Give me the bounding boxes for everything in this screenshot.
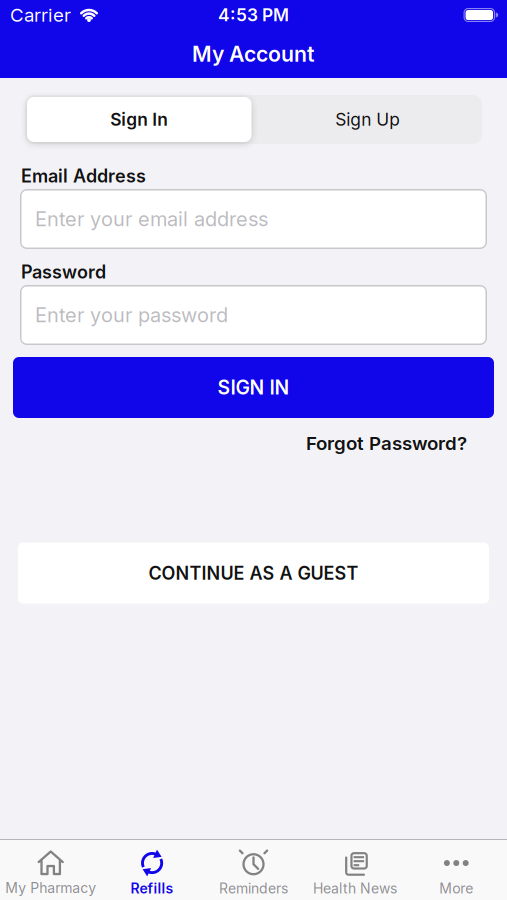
staticText: SIGN IN [217, 376, 289, 399]
staticText: Forgot Password? [306, 432, 467, 455]
staticText: Enter your password [35, 303, 228, 327]
staticText: Health News [313, 880, 397, 897]
button[interactable]: CONTINUE AS A GUEST [18, 543, 489, 604]
staticText: Enter your email address [35, 207, 268, 231]
staticText: Reminders [219, 880, 288, 897]
staticText: My Account [192, 41, 315, 67]
staticText: CONTINUE AS A GUEST [148, 562, 358, 584]
button[interactable]: More [406, 848, 507, 897]
staticText: Password [21, 261, 106, 283]
staticText: 4:53 PM [218, 4, 289, 25]
button[interactable]: Reminders [203, 848, 304, 897]
button[interactable]: My Pharmacy [0, 848, 101, 896]
staticText: Sign In [110, 109, 168, 130]
button[interactable]: Sign In [25, 95, 253, 144]
staticText: More [439, 880, 473, 897]
button[interactable]: Enter your email address [20, 189, 487, 249]
staticText: Carrier [10, 4, 71, 26]
button[interactable]: Forgot Password? [306, 432, 467, 455]
button[interactable]: Health News [304, 848, 406, 897]
staticText: Email Address [21, 165, 146, 187]
staticText: Sign Up [335, 109, 400, 130]
button[interactable]: Refills [101, 848, 203, 897]
staticText: Refills [131, 880, 174, 897]
button[interactable]: Enter your password [20, 285, 487, 345]
button[interactable]: Sign Up [253, 95, 482, 144]
staticText: My Pharmacy [5, 879, 96, 896]
button[interactable]: SIGN IN [13, 357, 494, 418]
